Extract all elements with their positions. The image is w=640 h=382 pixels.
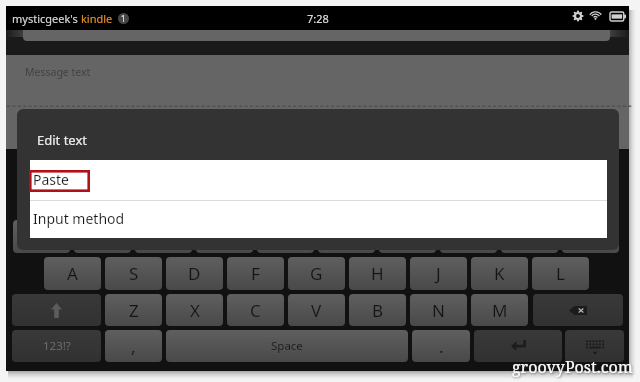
button[interactable]: J: [410, 257, 467, 290]
button[interactable]: Settings: [570, 8, 586, 24]
button[interactable]: X: [166, 294, 223, 326]
button[interactable]: B: [349, 294, 406, 326]
button[interactable]: A: [44, 257, 101, 290]
staticText: Paste: [33, 170, 69, 189]
staticText: O: [523, 225, 537, 248]
button[interactable]: Hide keyboard: [565, 330, 624, 362]
button[interactable]: Battery: [609, 8, 627, 24]
button[interactable]: G: [288, 257, 345, 290]
staticText: Q: [35, 225, 49, 248]
button[interactable]: U: [379, 220, 436, 253]
staticText: Y: [342, 225, 352, 248]
staticText: groovyPost.com: [512, 356, 633, 378]
button[interactable]: D: [166, 257, 223, 290]
button[interactable]: Space: [166, 330, 408, 362]
staticText: F: [251, 262, 260, 285]
button[interactable]: F: [227, 257, 284, 290]
button[interactable]: M: [471, 294, 528, 326]
staticText: Space: [271, 338, 303, 354]
button[interactable]: P: [562, 220, 619, 253]
button[interactable]: E: [135, 220, 192, 253]
button[interactable]: Wi-Fi: [587, 7, 603, 23]
button[interactable]: 123!?: [12, 330, 101, 362]
staticText: I: [466, 225, 472, 248]
button[interactable]: mysticgeek's: [12, 6, 629, 30]
staticText: mysticgeek's: [12, 11, 81, 26]
button[interactable]: R: [196, 220, 253, 253]
staticText: V: [311, 299, 322, 322]
button[interactable]: T: [257, 220, 314, 253]
button[interactable]: Paste: [30, 160, 607, 200]
button[interactable]: V: [288, 294, 345, 326]
staticText: Message text: [25, 65, 91, 79]
staticText: S: [129, 262, 139, 285]
staticText: W: [95, 225, 111, 248]
staticText: D: [188, 262, 201, 285]
button[interactable]: Enter: [474, 330, 562, 362]
button[interactable]: ,: [105, 330, 162, 362]
staticText: B: [372, 299, 384, 322]
staticText: Edit text: [37, 131, 87, 149]
staticText: 1: [121, 13, 126, 24]
button[interactable]: Z: [105, 294, 162, 326]
staticText: L: [556, 262, 565, 285]
button[interactable]: O: [501, 220, 558, 253]
staticText: E: [159, 225, 169, 248]
button[interactable]: L: [532, 257, 589, 290]
button[interactable]: H: [349, 257, 406, 290]
staticText: Z: [129, 299, 139, 322]
button[interactable]: N: [410, 294, 467, 326]
button[interactable]: I: [440, 220, 497, 253]
button[interactable]: Y: [318, 220, 375, 253]
staticText: X: [190, 299, 200, 322]
staticText: .: [439, 335, 444, 358]
staticText: ,: [131, 335, 136, 358]
staticText: Input method: [33, 209, 125, 228]
staticText: G: [310, 262, 323, 285]
staticText: J: [436, 262, 441, 285]
button[interactable]: Backspace: [533, 294, 623, 326]
button[interactable]: Shift: [12, 294, 101, 326]
button[interactable]: K: [471, 257, 528, 290]
staticText: T: [281, 225, 291, 248]
button[interactable]: Q: [13, 220, 70, 253]
staticText: R: [219, 225, 230, 248]
staticText: M: [492, 299, 508, 322]
staticText: U: [401, 225, 414, 248]
button[interactable]: W: [74, 220, 131, 253]
button[interactable]: S: [105, 257, 162, 290]
staticText: 123!?: [43, 338, 71, 354]
staticText: N: [432, 299, 445, 322]
staticText: C: [250, 299, 261, 322]
staticText: H: [371, 262, 384, 285]
staticText: A: [67, 262, 78, 285]
button[interactable]: .: [412, 330, 470, 362]
staticText: 7:28: [307, 11, 329, 26]
staticText: P: [585, 225, 596, 248]
staticText: kindle: [81, 11, 113, 26]
button[interactable]: Input method: [30, 201, 607, 238]
button[interactable]: C: [227, 294, 284, 326]
staticText: K: [494, 262, 505, 285]
